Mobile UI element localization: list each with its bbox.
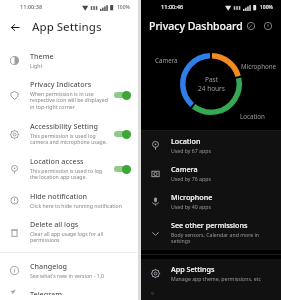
staticText: Body sensors, Calendar and more in setti… xyxy=(171,231,274,245)
staticText: Privacy Indicators xyxy=(30,79,92,89)
button[interactable]: Accessibility Setting xyxy=(0,116,138,151)
button[interactable]: Back xyxy=(6,18,24,36)
staticText: Location xyxy=(240,112,265,120)
button[interactable]: Info xyxy=(263,18,273,34)
staticText: 11:00:38 xyxy=(20,3,43,11)
button[interactable]: Camera xyxy=(141,159,281,187)
staticText: Camera xyxy=(155,56,178,64)
staticText: App Settings xyxy=(32,19,102,35)
staticText: Accessibility Setting xyxy=(30,121,99,131)
button[interactable]: Toggle xyxy=(114,90,131,100)
staticText: Used by 76 apps xyxy=(171,175,211,182)
staticText: Clear all app usage logs for all permiss… xyxy=(30,230,131,244)
staticText: 100% xyxy=(117,4,130,11)
button[interactable]: Privacy Indicators xyxy=(0,74,138,116)
staticText: This permission is used to log the locat… xyxy=(30,167,110,181)
button[interactable]: Toggle xyxy=(114,164,131,174)
staticText: Hide notification xyxy=(30,191,88,201)
staticText: Location xyxy=(171,136,201,146)
staticText: Past xyxy=(205,75,219,84)
staticText: When permission is in use respective ico… xyxy=(30,90,110,111)
button[interactable]: Location xyxy=(141,131,281,159)
staticText: Changelog xyxy=(30,261,68,271)
button[interactable]: App Settings xyxy=(141,259,281,287)
button[interactable]: Microphone xyxy=(141,187,281,215)
button[interactable]: Delete all logs xyxy=(0,214,138,249)
staticText: Theme xyxy=(30,51,54,61)
button[interactable]: Telegram xyxy=(0,284,138,300)
button[interactable]: Location access xyxy=(0,151,138,186)
staticText: 24 hours xyxy=(198,84,225,93)
staticText: This permission is used log camera and m… xyxy=(30,132,110,146)
staticText: Camera xyxy=(171,164,198,174)
staticText: See what's new in version - 1.0 xyxy=(30,272,104,279)
staticText: Used by 67 apps xyxy=(171,147,211,154)
button[interactable]: Hide notification xyxy=(0,186,138,214)
staticText: Telegram xyxy=(30,289,62,295)
button[interactable]: Changelog xyxy=(0,256,138,284)
button[interactable]: See other permissions xyxy=(141,215,281,250)
staticText: Used by 40 apps xyxy=(171,203,211,210)
staticText: 11:00:46 xyxy=(161,3,184,11)
staticText: 100% xyxy=(260,4,273,11)
staticText: Light xyxy=(30,62,43,69)
staticText: Click here to hide running notification xyxy=(30,202,122,209)
staticText: Location access xyxy=(30,156,84,166)
button[interactable]: Theme xyxy=(0,46,138,74)
staticText: See other permissions xyxy=(171,220,248,230)
button[interactable]: Help xyxy=(243,18,259,34)
staticText: Delete all logs xyxy=(30,219,79,229)
button[interactable]: Toggle xyxy=(114,129,131,139)
staticText: Manage app theme, permissions, etc xyxy=(171,275,261,282)
staticText: Privacy Dashboard xyxy=(149,19,243,33)
staticText: App Settings xyxy=(171,264,215,274)
staticText: Microphone xyxy=(241,62,277,70)
staticText: Microphone xyxy=(171,192,213,202)
